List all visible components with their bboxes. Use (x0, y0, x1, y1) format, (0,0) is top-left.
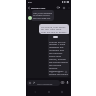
staticText: 9:41 (28, 1, 33, 4)
button[interactable]: Dislike (57, 70, 61, 74)
staticText: Of course, that works for me. I will sen… (41, 25, 67, 34)
button[interactable]: Back (26, 5, 31, 10)
button[interactable]: Hey, just wanted to check if you are sti… (32, 10, 54, 21)
button[interactable]: Home (45, 88, 53, 96)
button[interactable]: Emoji (27, 80, 60, 86)
button[interactable]: Recents (58, 88, 66, 96)
button[interactable]: Share (64, 70, 68, 74)
button[interactable]: Voice message (65, 80, 70, 85)
button[interactable]: Profile photo (28, 16, 32, 20)
staticText: Rachel Chen (31, 6, 46, 9)
button[interactable]: Call (61, 5, 66, 10)
button[interactable]: Video call (56, 5, 61, 10)
button[interactable]: Of course, that works for me. I will sen… (39, 24, 69, 34)
staticText: Hey, just wanted to check if you are sti… (33, 11, 53, 21)
button[interactable]: Like (50, 70, 54, 74)
button[interactable]: Emoji (28, 81, 32, 85)
button[interactable]: More options (66, 5, 71, 10)
button[interactable]: Camera (60, 80, 65, 85)
staticText: Text message (37, 82, 53, 85)
button[interactable]: Thanks for the update. I have reviewed t… (48, 34, 69, 77)
button[interactable]: Attach (32, 81, 36, 85)
staticText: Thanks for the update. I have reviewed t… (49, 40, 68, 77)
